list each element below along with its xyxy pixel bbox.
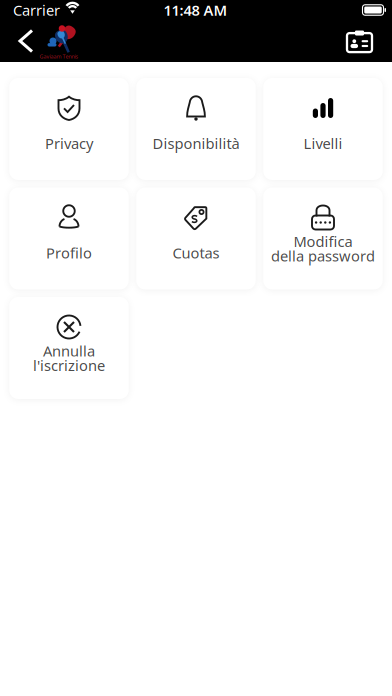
button[interactable]: Indietro: [6, 20, 42, 62]
staticText: Profilo: [46, 243, 92, 262]
staticText: Carrier: [13, 0, 60, 20]
staticText: Annulla: [43, 341, 95, 360]
button[interactable]: Tessera socio: [333, 20, 386, 62]
staticText: Cuotas: [172, 243, 219, 262]
staticText: Livelli: [303, 133, 342, 153]
button[interactable]: Cuotas: [136, 187, 256, 289]
button[interactable]: Livelli: [263, 78, 383, 180]
staticText: 11:48 AM: [163, 0, 227, 20]
staticText: l'iscrizione: [33, 355, 105, 375]
staticText: della password: [271, 246, 375, 265]
staticText: Gaviaam Tennis: [39, 53, 78, 60]
button[interactable]: Modifica: [263, 187, 383, 289]
staticText: Privacy: [45, 133, 93, 153]
button[interactable]: Profilo: [9, 187, 129, 289]
staticText: Modifica: [293, 231, 352, 251]
button[interactable]: Privacy: [9, 78, 129, 180]
button[interactable]: Disponibilità: [136, 78, 256, 180]
staticText: Disponibilità: [152, 133, 239, 153]
button[interactable]: Annulla: [9, 297, 129, 399]
